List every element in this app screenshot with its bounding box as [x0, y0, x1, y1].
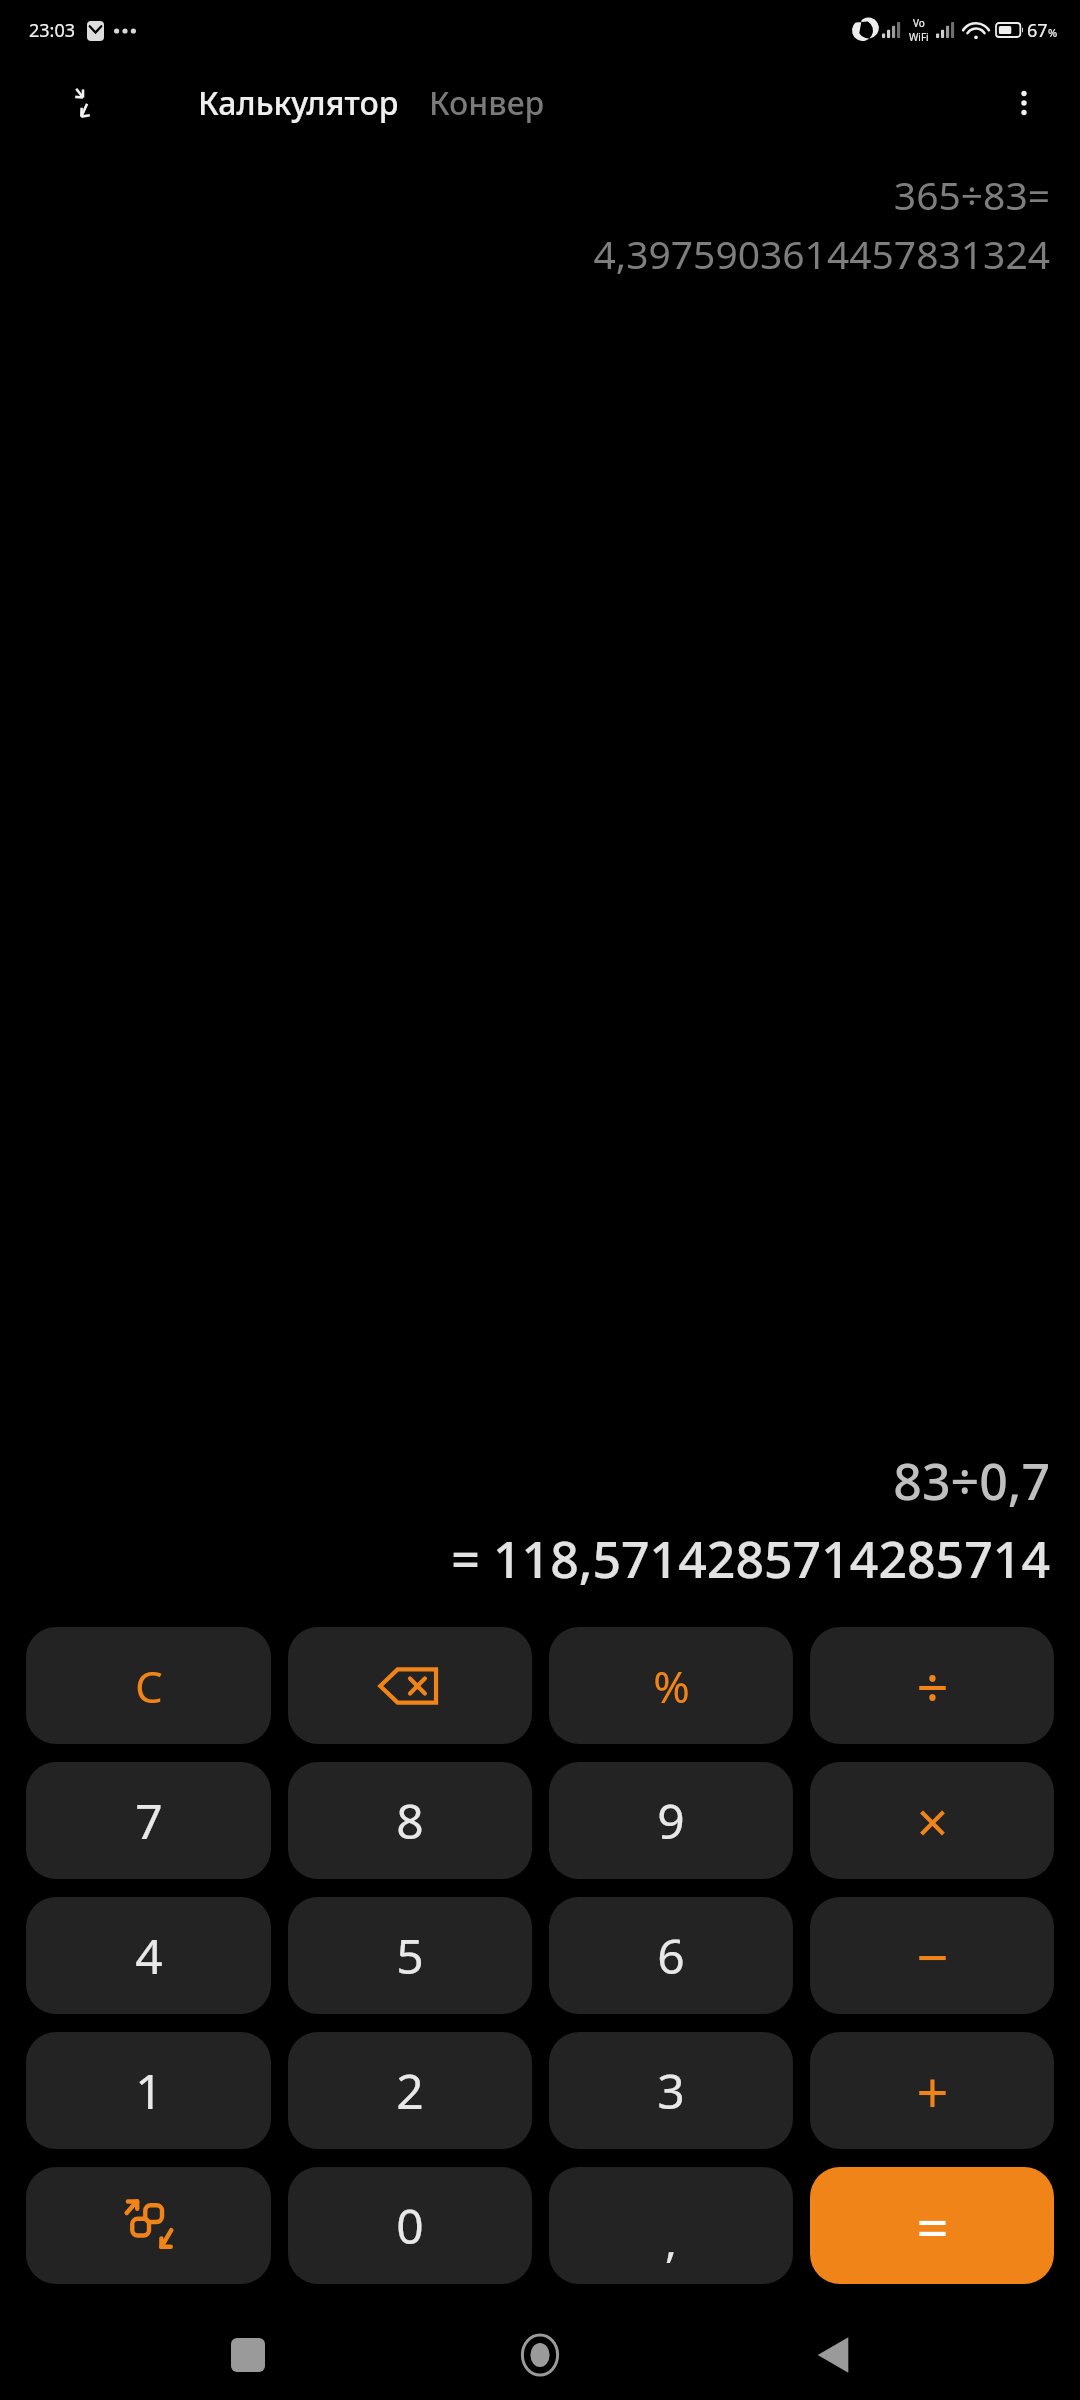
- staticText: +: [916, 2053, 949, 2129]
- button[interactable]: 0: [288, 2167, 532, 2284]
- button[interactable]: C: [26, 1627, 271, 1744]
- staticText: = 118,5714285714285714: [451, 1525, 1050, 1593]
- button[interactable]: Конвертер: [26, 2167, 271, 2284]
- staticText: Vo: [913, 16, 925, 30]
- staticText: 4: [135, 1923, 163, 1988]
- staticText: 1: [135, 2058, 163, 2123]
- staticText: −: [916, 1918, 949, 1994]
- button[interactable]: 4: [26, 1897, 271, 2014]
- staticText: 8: [396, 1788, 424, 1853]
- staticText: 23:03: [29, 18, 76, 43]
- button[interactable]: =: [810, 2167, 1054, 2284]
- staticText: ,: [665, 2210, 677, 2270]
- button[interactable]: 1: [26, 2032, 271, 2149]
- button[interactable]: 7: [26, 1762, 271, 1879]
- button[interactable]: 5: [288, 1897, 532, 2014]
- staticText: ÷: [916, 1648, 949, 1724]
- staticText: WiFi: [909, 30, 929, 44]
- button[interactable]: Конвер: [429, 81, 545, 125]
- button[interactable]: Главный экран: [495, 2310, 585, 2400]
- button[interactable]: Калькулятор: [198, 81, 399, 125]
- button[interactable]: ÷: [810, 1627, 1054, 1744]
- staticText: 365÷83=: [893, 168, 1050, 221]
- staticText: 6: [657, 1923, 685, 1988]
- button[interactable]: Недавние: [203, 2310, 293, 2400]
- button[interactable]: 6: [549, 1897, 793, 2014]
- button[interactable]: Свернуть: [60, 80, 106, 126]
- button[interactable]: Ещё: [996, 75, 1052, 131]
- staticText: 9: [657, 1788, 685, 1853]
- button[interactable]: +: [810, 2032, 1054, 2149]
- staticText: 5: [396, 1923, 424, 1988]
- staticText: Калькулятор: [198, 81, 399, 125]
- staticText: Конвер: [429, 81, 545, 125]
- staticText: 67: [1027, 18, 1048, 43]
- button[interactable]: 8: [288, 1762, 532, 1879]
- staticText: 7: [135, 1788, 163, 1853]
- button[interactable]: 2: [288, 2032, 532, 2149]
- button[interactable]: Назад: [788, 2310, 878, 2400]
- staticText: C: [135, 1656, 163, 1716]
- button[interactable]: Стереть: [288, 1627, 532, 1744]
- staticText: %: [1048, 25, 1058, 40]
- staticText: 0: [396, 2193, 424, 2258]
- staticText: 3: [657, 2058, 685, 2123]
- staticText: =: [916, 2188, 949, 2264]
- button[interactable]: 3: [549, 2032, 793, 2149]
- staticText: 2: [396, 2058, 424, 2123]
- button[interactable]: −: [810, 1897, 1054, 2014]
- staticText: ×: [916, 1783, 949, 1859]
- staticText: %: [653, 1656, 690, 1716]
- staticText: 83÷0,7: [893, 1447, 1050, 1515]
- button[interactable]: 9: [549, 1762, 793, 1879]
- button[interactable]: ×: [810, 1762, 1054, 1879]
- staticText: 4,3975903614457831324: [593, 227, 1050, 280]
- button[interactable]: ,: [549, 2167, 793, 2284]
- button[interactable]: %: [549, 1627, 793, 1744]
